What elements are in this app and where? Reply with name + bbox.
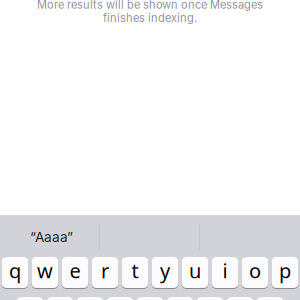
staticText: finishes indexing. [103,11,197,25]
staticText: o [249,257,261,284]
button[interactable]: e [61,257,88,289]
button[interactable]: h [166,297,193,300]
button[interactable]: i [211,257,238,289]
button[interactable]: “Aaaa” [0,215,100,257]
button[interactable]: d [76,297,103,300]
staticText: y [160,257,170,284]
button[interactable]: k [226,297,253,300]
staticText: p [279,257,291,284]
staticText: t [131,257,138,284]
button[interactable]: s [46,297,73,300]
button[interactable]: y [151,257,178,289]
button[interactable]: q [1,257,28,289]
staticText: “Aaaa” [30,229,73,245]
staticText: i [222,257,227,284]
staticText: w [37,257,53,284]
button[interactable]: w [31,257,58,289]
staticText: r [101,257,109,284]
button[interactable]: l [256,297,283,300]
button[interactable]: a [16,297,43,300]
button[interactable]: f [106,297,133,300]
staticText: e [69,257,80,284]
staticText: More results will be shown once Messages [37,0,263,11]
button[interactable]: p [271,257,298,289]
button[interactable]: u [181,257,208,289]
button[interactable]: o [241,257,268,289]
staticText: u [189,257,201,284]
button[interactable]: g [136,297,163,300]
button[interactable]: t [121,257,148,289]
staticText: q [9,257,21,284]
button[interactable]: j [196,297,223,300]
button[interactable]: r [91,257,118,289]
